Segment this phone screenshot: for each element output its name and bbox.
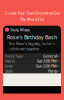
staticText: It is Rose's big day, so let's celebrate… [9,41,55,51]
button[interactable]: Ends [3,63,61,68]
staticText: Style [5,68,13,73]
staticText: Party [48,68,57,73]
staticText: Ends [5,63,13,68]
staticText: General [43,53,57,58]
staticText: Starts [5,58,15,63]
button[interactable]: Starts [3,58,61,63]
staticText: Sat 3:00 PM [37,58,57,63]
staticText: > [57,58,59,63]
staticText: Create Your Own Event And Get [4,10,59,16]
staticText: Rose's Birthday Bash [7,34,57,41]
staticText: > [57,53,59,58]
staticText: > [57,68,59,73]
staticText: > [57,63,59,68]
button[interactable]: Style [3,68,61,73]
staticText: Event Type [5,53,23,58]
staticText: Tasty Maps [10,27,30,32]
staticText: The Word Out [20,17,44,22]
staticText: Sun 3:00 PM [36,63,57,68]
button[interactable]: Event Type [3,53,61,58]
